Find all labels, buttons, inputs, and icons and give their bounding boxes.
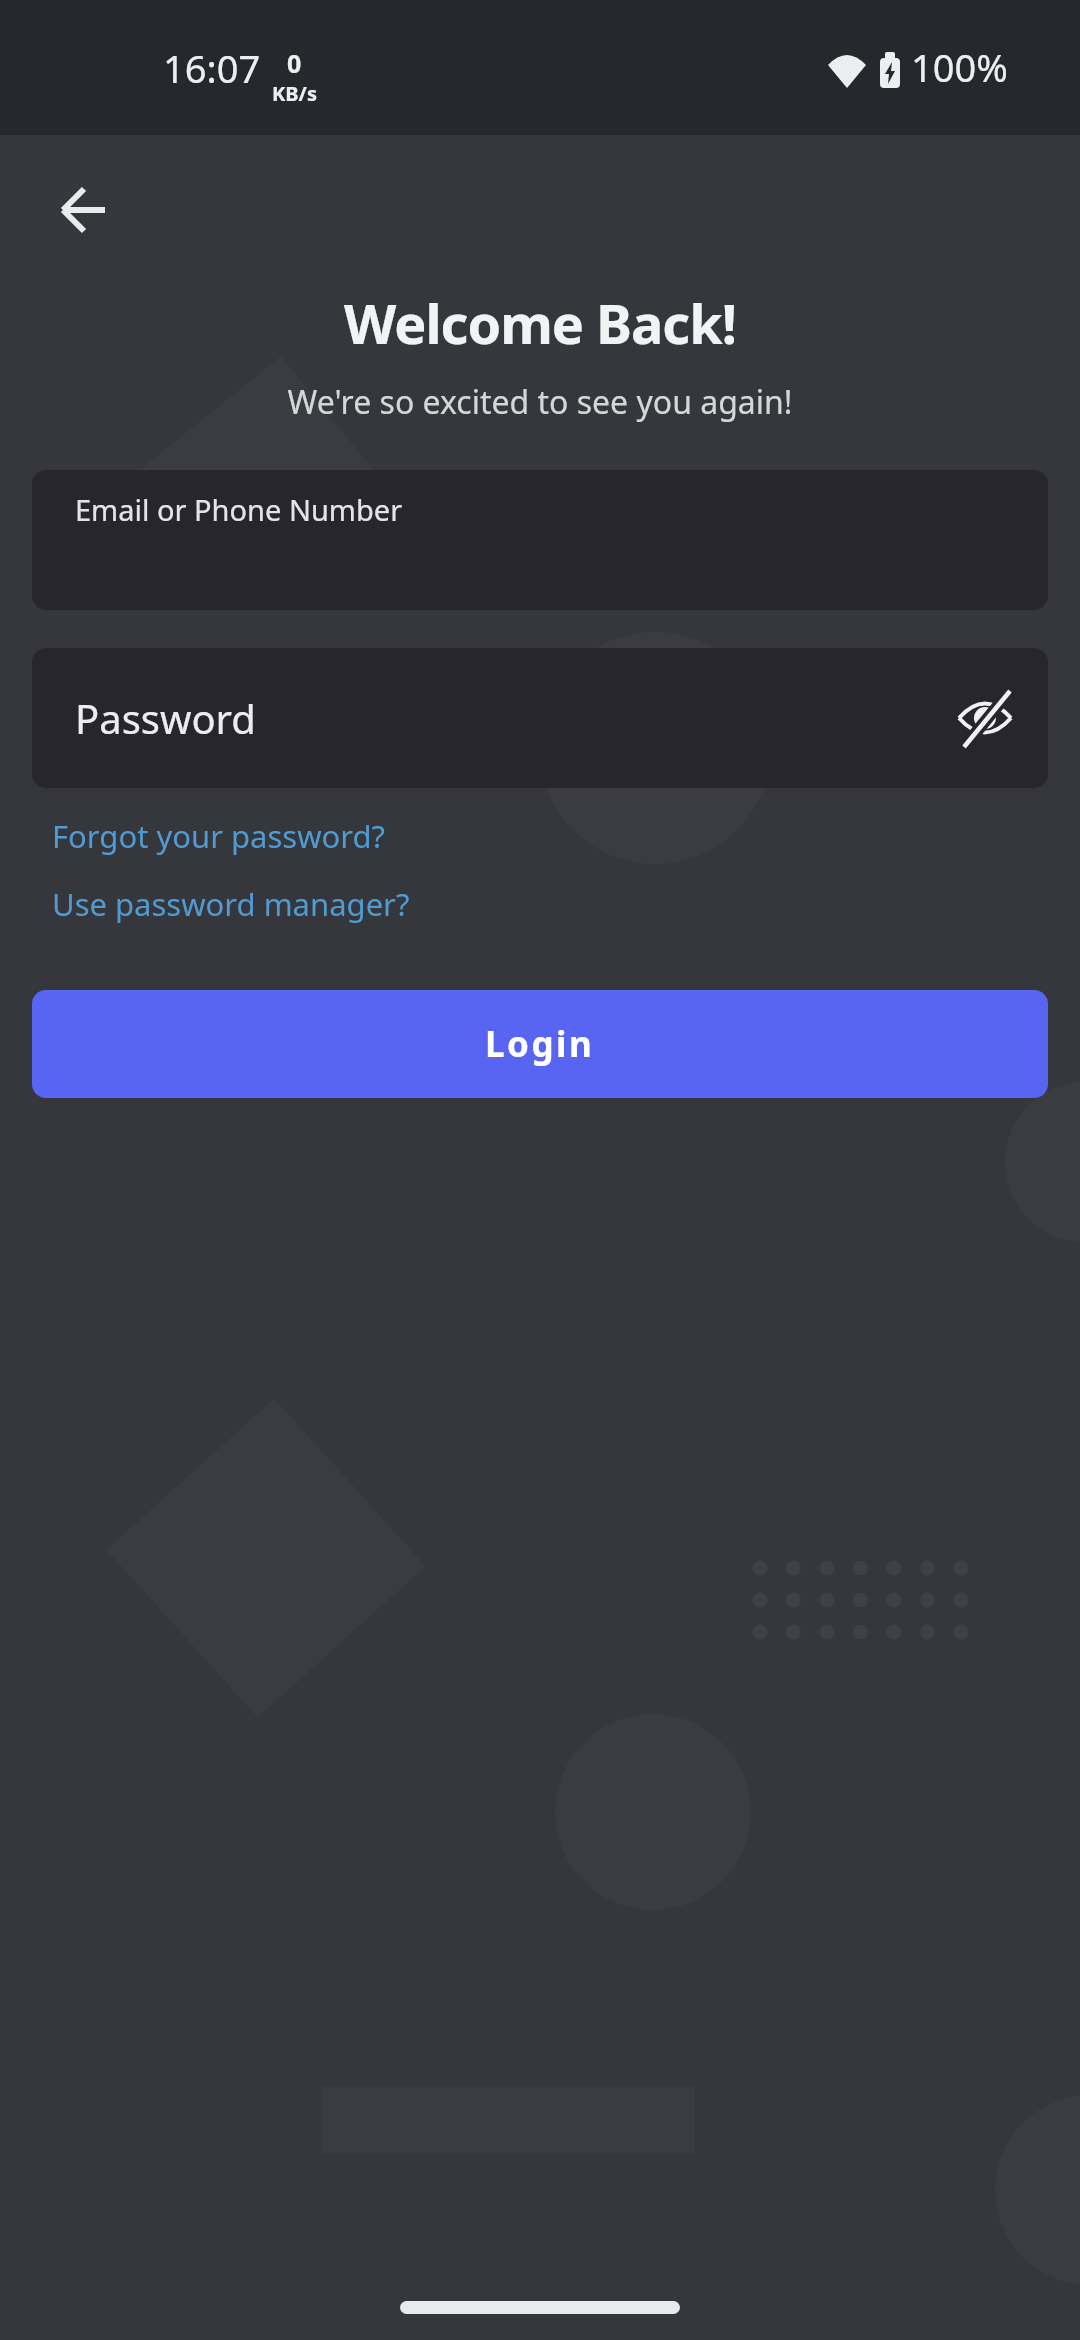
button[interactable]: Use password manager?	[52, 883, 410, 925]
staticText: KB/s	[272, 80, 317, 107]
button[interactable]: Password	[32, 648, 1048, 788]
button[interactable]	[949, 682, 1021, 754]
staticText: 100%	[911, 41, 1008, 93]
staticText: 0	[287, 46, 302, 80]
staticText: We're so excited to see you again!	[0, 380, 1080, 424]
button[interactable]: Email or Phone Number	[32, 470, 1048, 610]
staticText: 16:07	[163, 42, 261, 94]
staticText: Email or Phone Number	[75, 490, 403, 529]
staticText: Welcome Back!	[0, 286, 1080, 360]
button[interactable]: Login	[32, 990, 1048, 1098]
button[interactable]: Forgot your password?	[52, 815, 385, 857]
staticText: Login	[485, 1020, 595, 1068]
staticText: Password	[75, 691, 256, 745]
button[interactable]	[36, 162, 132, 258]
